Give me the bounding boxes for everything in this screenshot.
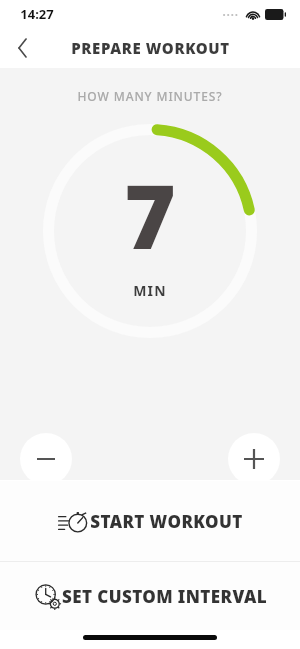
- staticText: HOW MANY MINUTES?: [77, 88, 223, 104]
- button[interactable]: SET CUSTOM INTERVAL: [0, 562, 300, 630]
- button[interactable]: Decrease minutes: [20, 433, 72, 485]
- staticText: START WORKOUT: [90, 510, 243, 533]
- button[interactable]: Increase minutes: [228, 433, 280, 485]
- staticText: 7: [124, 155, 176, 275]
- staticText: CHOOSE A CUSTOM LENGTH: [70, 500, 231, 514]
- staticText: 14:27: [20, 5, 54, 23]
- staticText: SET CUSTOM INTERVAL: [62, 585, 267, 608]
- button[interactable]: START WORKOUT: [0, 481, 300, 561]
- button[interactable]: Back: [0, 28, 44, 68]
- staticText: MIN: [133, 281, 167, 300]
- staticText: PREPARE WORKOUT: [71, 38, 230, 58]
